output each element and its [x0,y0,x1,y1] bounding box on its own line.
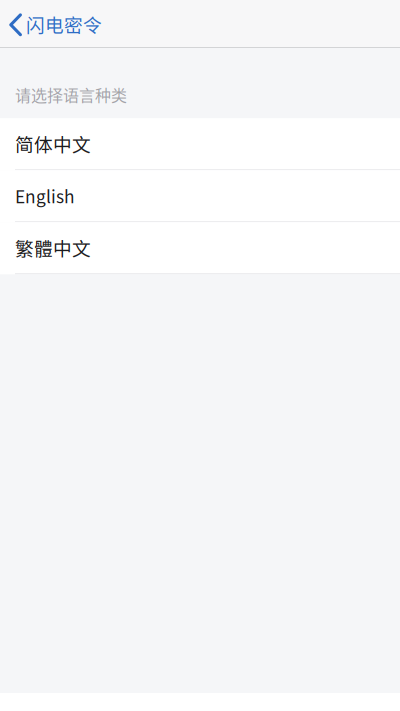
staticText: 简体中文 [15,130,91,157]
button[interactable]: 繁體中文 [0,222,400,274]
staticText: 闪电密令 [26,10,102,37]
button[interactable]: English [0,170,400,222]
button[interactable]: 简体中文 [0,118,400,170]
staticText: English [15,183,75,208]
staticText: 繁體中文 [15,234,91,261]
button[interactable]: 返回 闪电密令 [0,0,110,47]
staticText: 请选择语言种类 [15,83,127,106]
